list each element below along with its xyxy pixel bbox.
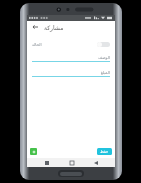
button[interactable]: المبلغ (32, 69, 110, 77)
button[interactable]: حفظ (97, 148, 112, 155)
button[interactable]: الوصف (32, 54, 110, 62)
staticText: المبلغ (100, 70, 110, 75)
button[interactable]: Recents (42, 158, 51, 167)
button[interactable]: Add (30, 148, 37, 155)
staticText: الوصف (98, 55, 110, 60)
button[interactable]: Back (30, 22, 40, 32)
button[interactable]: Home (67, 158, 76, 167)
staticText: مشاركة (44, 24, 64, 31)
staticText: الحالة (32, 42, 42, 47)
button[interactable]: Back (91, 158, 100, 167)
button[interactable]: الحالة (32, 39, 110, 49)
staticText: حفظ (100, 149, 109, 154)
